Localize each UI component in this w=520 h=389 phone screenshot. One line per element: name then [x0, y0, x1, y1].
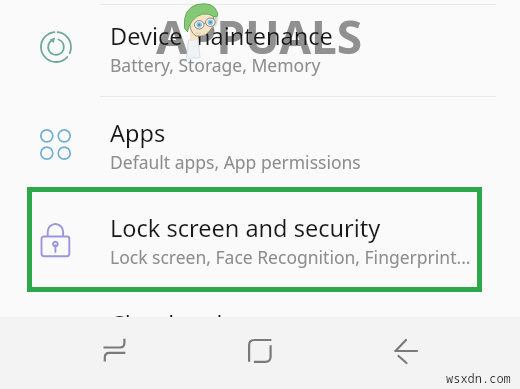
staticText: Default apps, App permissions	[110, 150, 361, 174]
button[interactable]: Back	[389, 334, 423, 368]
staticText: Lock screen and security	[110, 212, 381, 244]
button[interactable]: Home	[243, 334, 277, 368]
staticText: APPUALS	[156, 5, 363, 68]
staticText: wsxdn.com	[446, 370, 511, 386]
button[interactable]: Lock screen and security	[0, 191, 520, 288]
staticText: Device maintenance	[110, 20, 333, 52]
button[interactable]: Recent apps	[98, 334, 132, 368]
button[interactable]: Apps	[0, 97, 520, 191]
button[interactable]: Device maintenance	[0, 0, 520, 96]
staticText: Apps	[110, 117, 166, 149]
staticText: Battery, Storage, Memory	[110, 53, 321, 77]
staticText: Cloud and accounts	[110, 308, 328, 340]
staticText: Lock screen, Face Recognition, Fingerpri…	[110, 245, 471, 269]
